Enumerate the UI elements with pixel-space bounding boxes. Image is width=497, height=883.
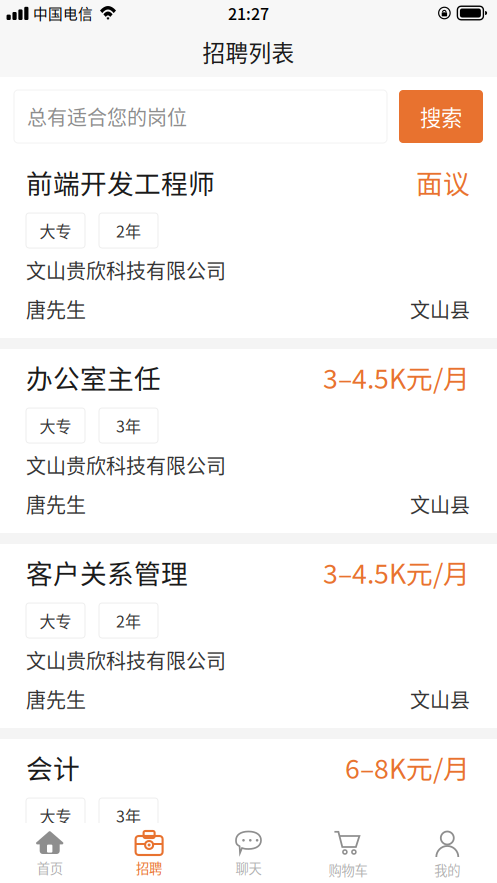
staticText: 2年 [116,609,141,632]
staticText: 唐先生 [26,294,86,323]
button[interactable]: 招聘 [99,823,199,883]
staticText: 2年 [116,219,141,242]
staticText: 3–4.5K元/月 [323,553,470,591]
staticText: 首页 [37,858,63,877]
staticText: 大专 [39,804,71,827]
staticText: 聊天 [235,858,261,877]
staticText: 文山县 [410,489,470,518]
staticText: 文山贵欣科技有限公司 [26,255,226,284]
staticText: 搜索 [420,101,462,132]
button[interactable]: 办公室主任 [0,349,497,533]
staticText: 会计 [26,748,80,786]
button[interactable]: 前端开发工程师 [0,154,497,338]
staticText: 购物车 [328,860,367,879]
staticText: 3年 [116,414,141,437]
staticText: 21:27 [228,1,269,25]
staticText: 3–4.5K元/月 [323,358,470,396]
staticText: 大专 [39,219,71,242]
staticText: 唐先生 [26,489,86,518]
staticText: 前端开发工程师 [26,163,215,201]
staticText: 招聘列表 [202,35,294,68]
button[interactable]: 我的 [398,823,497,883]
staticText: 文山县 [410,684,470,713]
staticText: 总有适合您的岗位 [27,102,187,131]
staticText: 文山贵欣科技有限公司 [26,840,226,869]
staticText: 文山县 [410,294,470,323]
staticText: 面议 [416,163,470,201]
staticText: 文山贵欣科技有限公司 [26,645,226,674]
staticText: 6–8K元/月 [345,748,470,786]
staticText: 3年 [116,804,141,827]
staticText: 文山贵欣科技有限公司 [26,450,226,479]
staticText: 唐先生 [26,684,86,713]
staticText: 招聘 [136,858,162,877]
button[interactable]: 会计 [0,739,497,883]
button[interactable]: 聊天 [199,823,298,883]
button[interactable]: 搜索 [399,90,483,143]
staticText: 办公室主任 [26,358,161,396]
button[interactable]: 购物车 [298,823,398,883]
staticText: 客户关系管理 [26,553,188,591]
button[interactable]: 首页 [0,823,99,883]
staticText: 大专 [39,414,71,437]
staticText: 中国电信 [33,2,93,24]
button[interactable]: 客户关系管理 [0,544,497,728]
staticText: 大专 [39,609,71,632]
staticText: 我的 [434,860,460,879]
